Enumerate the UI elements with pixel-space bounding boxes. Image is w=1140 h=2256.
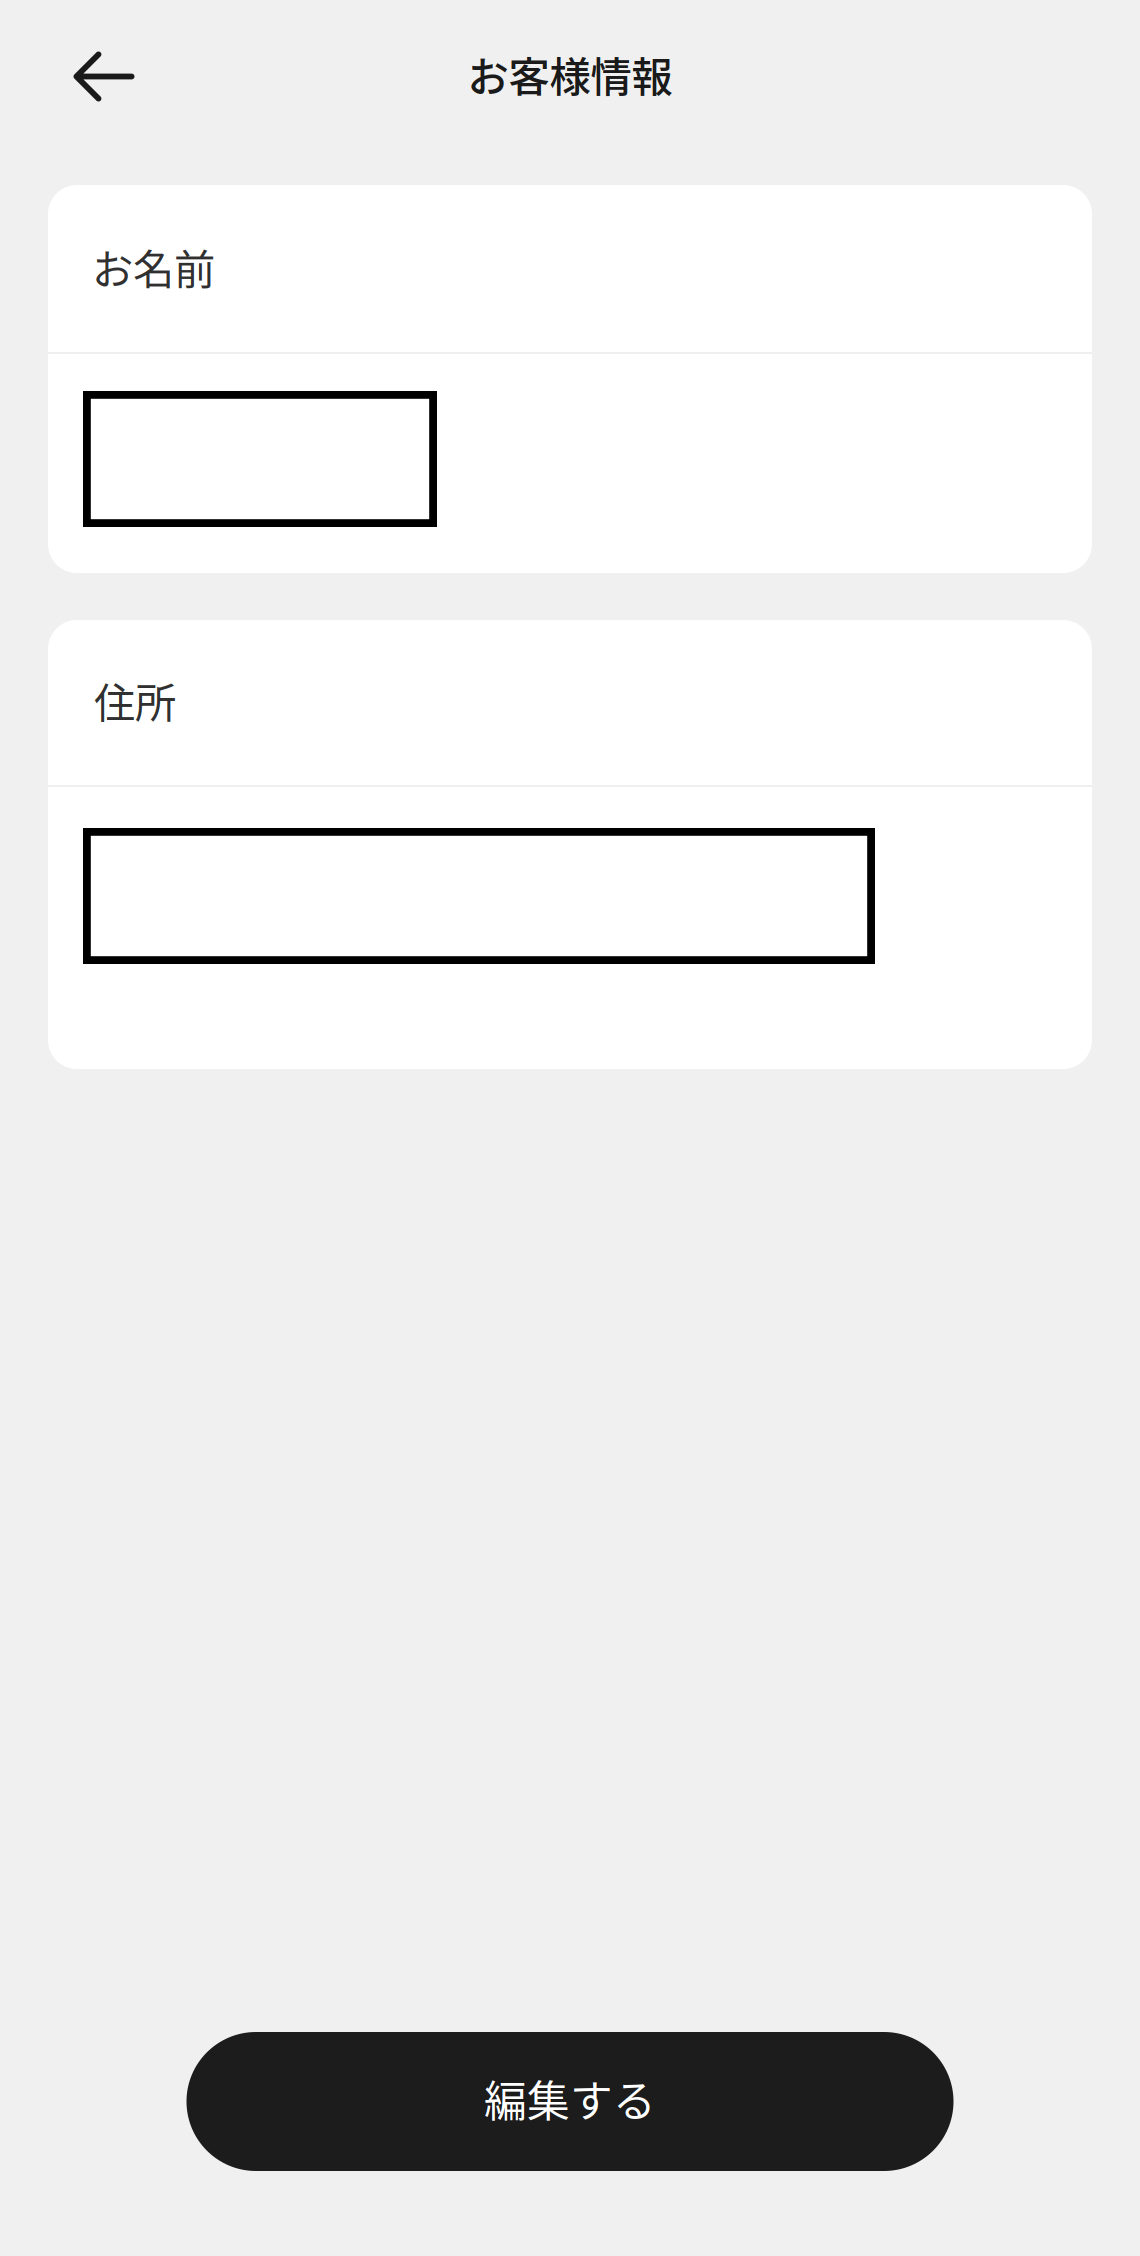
staticText: お名前	[92, 237, 215, 296]
button[interactable]: Back	[59, 32, 149, 120]
button[interactable]: 編集する	[186, 2032, 953, 2171]
staticText: 住所	[94, 670, 176, 730]
staticText: お客様情報	[467, 44, 672, 104]
staticText: 編集する	[484, 2068, 656, 2129]
